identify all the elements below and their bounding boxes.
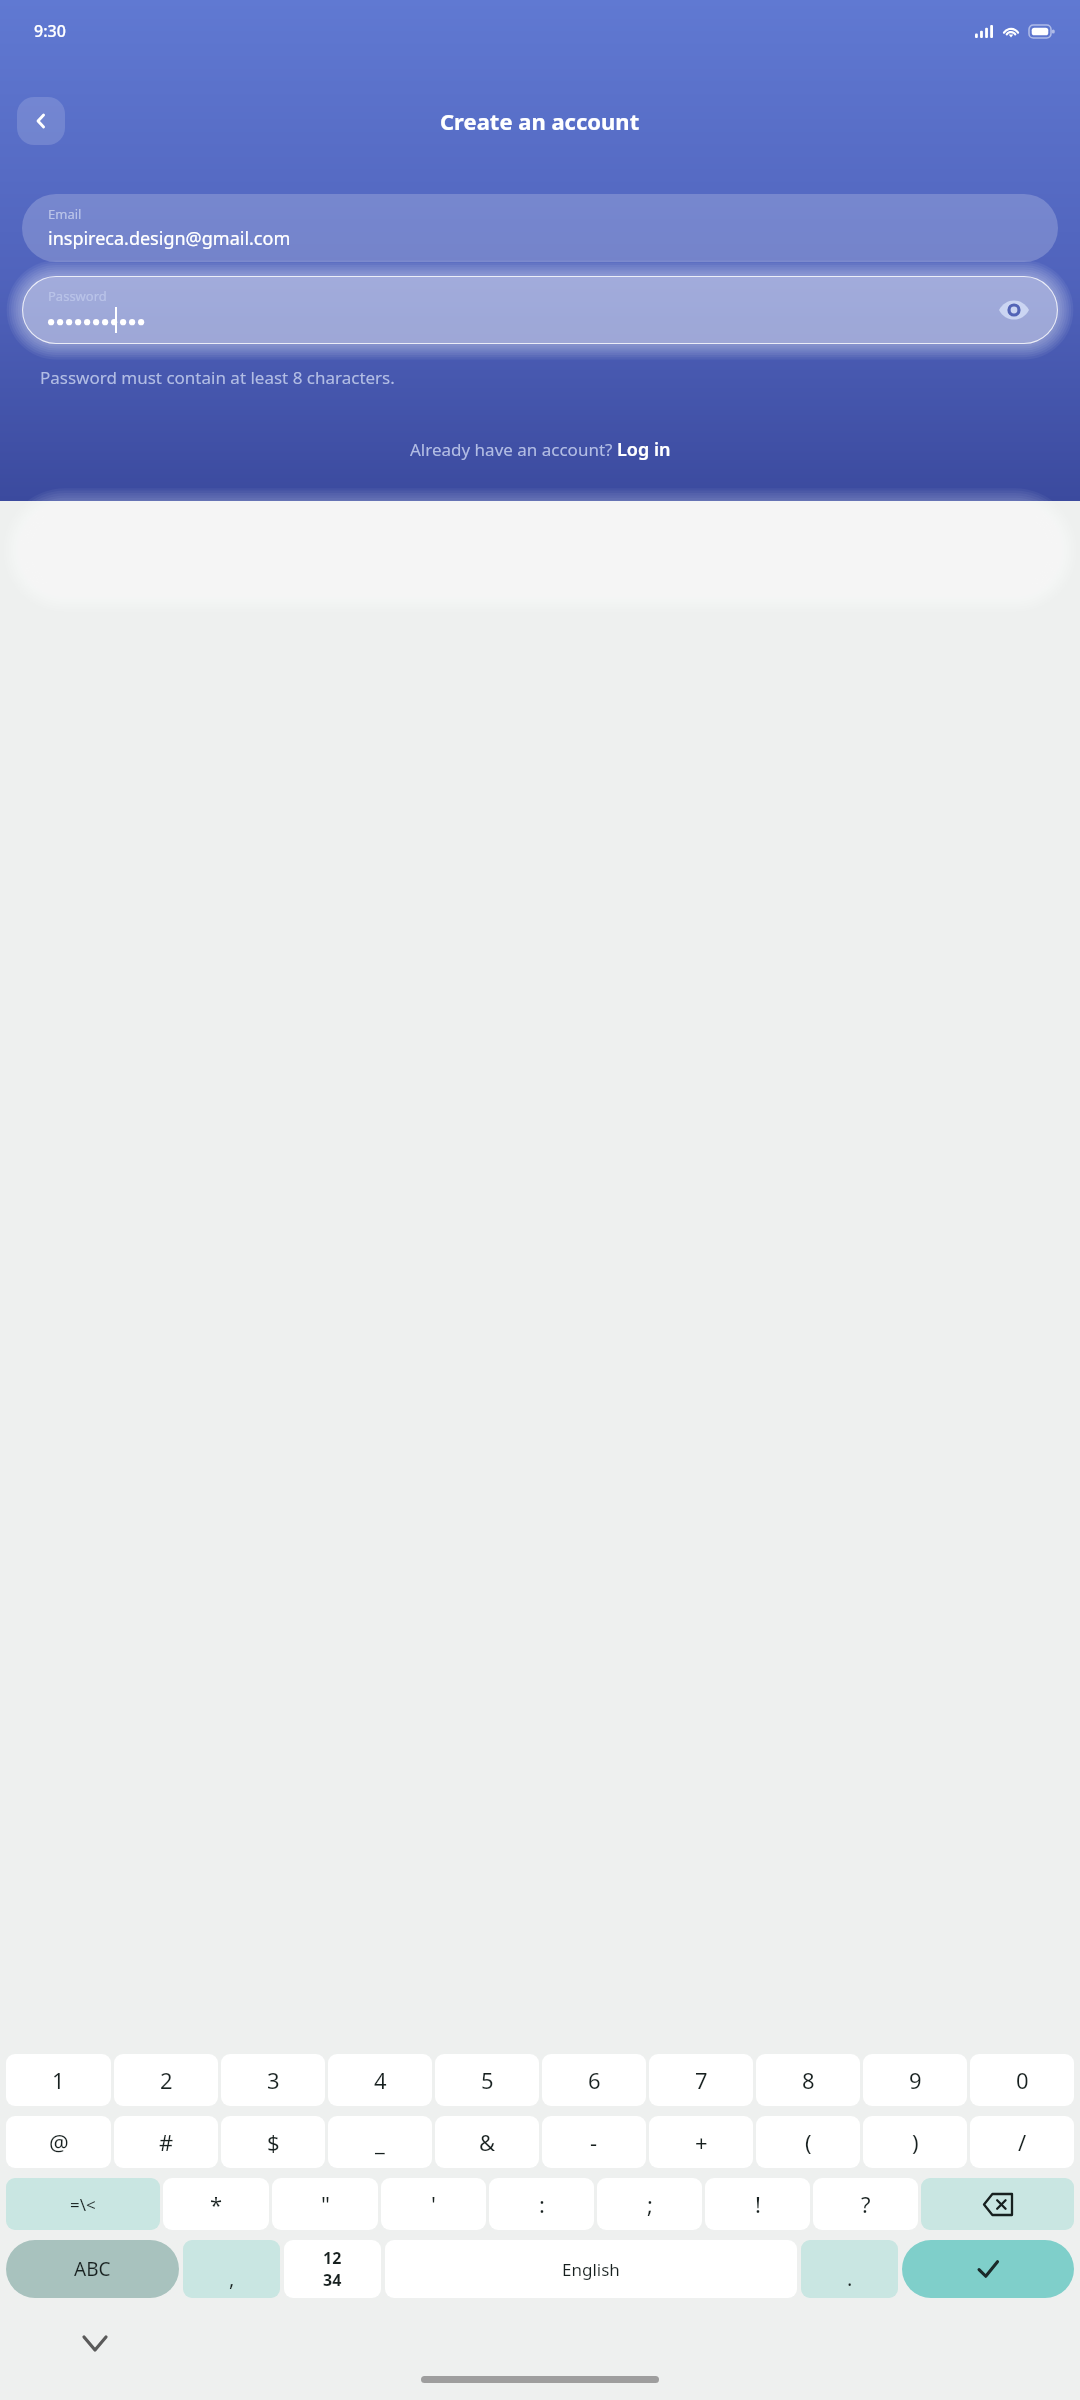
button[interactable]: Hide keyboard — [78, 2326, 112, 2360]
staticText: ? — [861, 2189, 871, 2219]
button[interactable]: 7 — [649, 2054, 753, 2106]
button[interactable]: 12 — [284, 2240, 381, 2298]
staticText: ; — [647, 2189, 653, 2219]
button[interactable]: / — [970, 2116, 1074, 2168]
staticText: 5 — [481, 2065, 494, 2095]
button[interactable]: ! — [705, 2178, 810, 2230]
staticText: " — [321, 2189, 330, 2219]
staticText: Log in — [617, 437, 671, 462]
staticText: 3 — [267, 2065, 280, 2095]
staticText: + — [695, 2127, 708, 2157]
staticText: : — [539, 2189, 545, 2219]
button[interactable]: $ — [221, 2116, 325, 2168]
button[interactable]: , — [183, 2240, 280, 2298]
staticText: English — [562, 2258, 620, 2281]
staticText: 1 — [52, 2065, 65, 2095]
button[interactable]: # — [114, 2116, 218, 2168]
button[interactable]: 0 — [970, 2054, 1074, 2106]
staticText: Email — [48, 205, 82, 223]
button[interactable]: _ — [328, 2116, 432, 2168]
button[interactable]: English — [385, 2240, 797, 2298]
staticText: Already have an account? — [410, 438, 617, 461]
button[interactable]: =\< — [6, 2178, 160, 2230]
staticText: 8 — [802, 2065, 815, 2095]
button[interactable]: ) — [863, 2116, 967, 2168]
button[interactable]: * — [163, 2178, 269, 2230]
button[interactable]: ? — [813, 2178, 918, 2230]
button[interactable]: Back — [17, 97, 65, 145]
staticText: 4 — [374, 2065, 387, 2095]
button[interactable]: ' — [381, 2178, 486, 2230]
button[interactable]: 4 — [328, 2054, 432, 2106]
staticText: ! — [755, 2189, 761, 2219]
button[interactable]: Already have an account? — [0, 437, 1080, 462]
staticText: 9:30 — [34, 20, 66, 42]
staticText: 6 — [588, 2065, 601, 2095]
staticText: =\< — [70, 2193, 96, 2216]
button[interactable]: ABC — [6, 2240, 179, 2298]
button[interactable]: 3 — [221, 2054, 325, 2106]
staticText: / — [1018, 2127, 1027, 2157]
button[interactable]: Email — [22, 194, 1058, 262]
button[interactable]: 6 — [542, 2054, 646, 2106]
staticText: Password must contain at least 8 charact… — [40, 366, 1080, 389]
button[interactable]: 1 — [6, 2054, 111, 2106]
button[interactable]: ; — [597, 2178, 702, 2230]
button[interactable]: 5 — [435, 2054, 539, 2106]
button[interactable]: & — [435, 2116, 539, 2168]
button[interactable]: - — [542, 2116, 646, 2168]
staticText: # — [159, 2127, 174, 2157]
button[interactable]: + — [649, 2116, 753, 2168]
staticText: * — [210, 2189, 223, 2219]
button[interactable]: 8 — [756, 2054, 860, 2106]
staticText: 7 — [695, 2065, 708, 2095]
staticText: , — [229, 2265, 235, 2292]
staticText: 2 — [160, 2065, 173, 2095]
staticText: ' — [431, 2189, 436, 2219]
staticText: @ — [49, 2127, 69, 2157]
button[interactable]: Password — [22, 276, 1058, 344]
button[interactable]: 9 — [863, 2054, 967, 2106]
button[interactable]: 2 — [114, 2054, 218, 2106]
staticText: $ — [267, 2127, 280, 2157]
staticText: - — [590, 2127, 598, 2157]
staticText: . — [847, 2265, 853, 2292]
button[interactable]: " — [272, 2178, 378, 2230]
staticText: _ — [375, 2127, 385, 2157]
staticText: ( — [805, 2127, 812, 2157]
staticText: Password — [48, 287, 107, 305]
staticText: ) — [912, 2127, 919, 2157]
staticText: & — [479, 2127, 496, 2157]
button[interactable]: @ — [6, 2116, 111, 2168]
staticText: 34 — [323, 2269, 342, 2291]
button[interactable]: . — [801, 2240, 898, 2298]
staticText: 0 — [1016, 2065, 1029, 2095]
button[interactable]: ( — [756, 2116, 860, 2168]
staticText: 9 — [909, 2065, 922, 2095]
button[interactable]: Enter — [902, 2240, 1074, 2298]
button[interactable]: Show password — [992, 288, 1036, 332]
button[interactable]: Backspace — [921, 2178, 1074, 2230]
staticText: inspireca.design@gmail.com — [48, 226, 291, 251]
staticText: Create an account — [440, 106, 640, 136]
staticText: ABC — [74, 2256, 111, 2282]
staticText: 12 — [323, 2247, 342, 2269]
button[interactable]: : — [489, 2178, 594, 2230]
